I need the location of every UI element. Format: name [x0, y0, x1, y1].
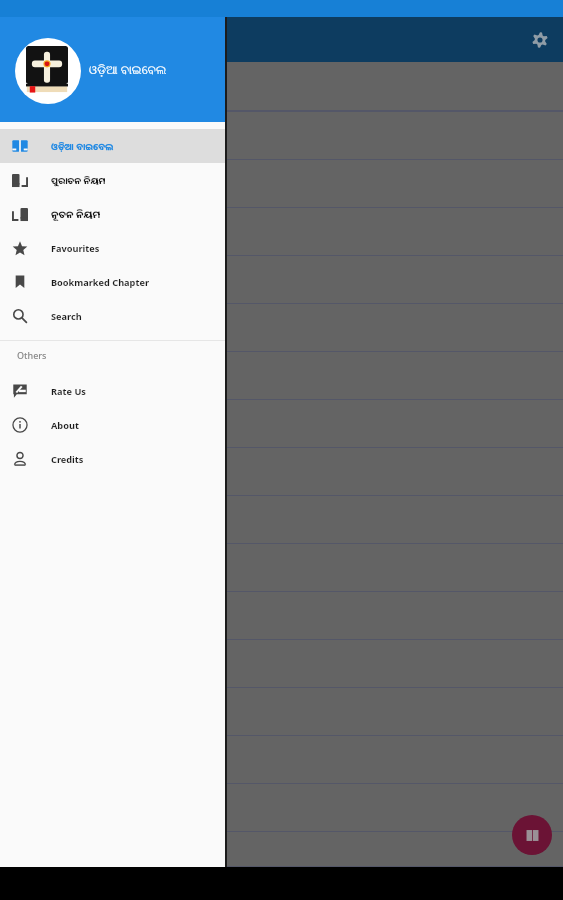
staticText: Rate Us — [51, 385, 86, 398]
button[interactable]: Credits — [0, 442, 225, 476]
staticText: ପୁରାତନ ନିୟମ — [51, 174, 106, 186]
staticText: Bookmarked Chapter — [51, 276, 149, 289]
button[interactable]: Rate Us — [0, 374, 225, 408]
button[interactable] — [0, 62, 563, 112]
staticText: Credits — [51, 453, 84, 466]
button[interactable] — [0, 592, 563, 640]
button[interactable]: ଓଡ଼ିଆ ବାଇବେଲ — [0, 129, 225, 163]
button[interactable] — [0, 688, 563, 736]
button[interactable] — [0, 208, 563, 256]
button[interactable] — [0, 544, 563, 592]
button[interactable]: Bookmarked Chapter — [0, 265, 225, 299]
button[interactable] — [0, 160, 563, 208]
button[interactable] — [0, 736, 563, 784]
button[interactable]: Favourites — [0, 231, 225, 265]
button[interactable] — [0, 448, 563, 496]
button[interactable]: Read book — [512, 815, 552, 855]
staticText: Favourites — [51, 242, 100, 255]
button[interactable] — [0, 784, 563, 832]
staticText: Others — [17, 349, 47, 361]
staticText: ଓଡ଼ିଆ ବାଇବେଲ — [51, 140, 114, 152]
button[interactable]: Settings — [526, 26, 554, 54]
button[interactable] — [0, 832, 563, 867]
button[interactable]: ନୂତନ ନିୟମ — [0, 197, 225, 231]
button[interactable] — [0, 352, 563, 400]
button[interactable]: About — [0, 408, 225, 442]
button[interactable] — [0, 496, 563, 544]
button[interactable] — [0, 400, 563, 448]
button[interactable]: Search — [0, 299, 225, 333]
button[interactable] — [0, 304, 563, 352]
staticText: ଓଡ଼ିଆ ବାଇବେଲ — [89, 61, 167, 77]
button[interactable]: ପୁରାତନ ନିୟମ — [0, 163, 225, 197]
button[interactable] — [0, 640, 563, 688]
staticText: Search — [51, 310, 82, 323]
button[interactable] — [0, 112, 563, 160]
staticText: About — [51, 419, 79, 432]
staticText: ନୂତନ ନିୟମ — [51, 208, 101, 221]
button[interactable] — [0, 256, 563, 304]
